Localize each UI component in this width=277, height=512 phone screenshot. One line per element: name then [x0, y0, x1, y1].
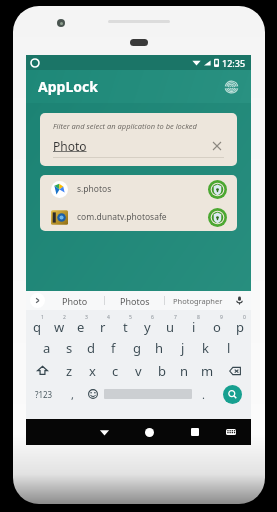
button[interactable]: Backspace: [219, 359, 251, 382]
staticText: p: [236, 318, 244, 336]
button[interactable]: v: [127, 359, 150, 382]
button[interactable]: f: [102, 336, 125, 359]
button[interactable]: Back: [82, 419, 127, 445]
button[interactable]: 8: [182, 313, 205, 336]
staticText: o: [213, 318, 221, 336]
button[interactable]: ,: [62, 382, 82, 406]
button[interactable]: Shift: [26, 359, 58, 382]
staticText: x: [89, 362, 96, 380]
staticText: j: [181, 339, 185, 357]
button[interactable]: Photographer: [165, 291, 230, 310]
button[interactable]: 5: [114, 313, 136, 336]
staticText: f: [111, 339, 116, 357]
staticText: y: [144, 318, 151, 336]
button[interactable]: .: [192, 382, 214, 406]
staticText: ,: [71, 387, 74, 402]
staticText: d: [87, 339, 95, 357]
staticText: n: [180, 362, 189, 380]
staticText: t: [123, 318, 128, 336]
button[interactable]: x: [81, 359, 104, 382]
button[interactable]: Search: [223, 385, 242, 404]
staticText: 5: [129, 314, 132, 321]
button[interactable]: Filter and select an application to be l…: [40, 113, 237, 166]
staticText: g: [133, 339, 141, 357]
button[interactable]: Photo: [45, 291, 104, 310]
staticText: k: [202, 339, 209, 357]
button[interactable]: 7: [159, 313, 182, 336]
button[interactable]: 6: [136, 313, 159, 336]
button[interactable]: h: [148, 336, 171, 359]
staticText: 12:35: [222, 57, 246, 69]
button[interactable]: n: [173, 359, 196, 382]
button[interactable]: Home: [127, 419, 172, 445]
staticText: a: [43, 339, 51, 357]
button[interactable]: s.photos: [40, 175, 237, 203]
staticText: AppLock: [38, 77, 98, 96]
staticText: Photos: [120, 295, 150, 307]
button[interactable]: 0: [228, 313, 251, 336]
button[interactable]: Voice input: [230, 291, 248, 310]
staticText: 4: [107, 314, 110, 321]
button[interactable]: c: [104, 359, 127, 382]
staticText: Photo: [53, 138, 87, 154]
button[interactable]: s: [58, 336, 80, 359]
staticText: 3: [85, 314, 88, 321]
staticText: 9: [220, 314, 223, 321]
button[interactable]: m: [196, 359, 219, 382]
button[interactable]: 4: [92, 313, 114, 336]
button[interactable]: a: [36, 336, 58, 359]
button[interactable]: com.dunatv.photosafe: [40, 203, 237, 231]
staticText: s: [66, 339, 73, 357]
staticText: Photographer: [173, 296, 223, 306]
staticText: i: [192, 318, 196, 336]
button[interactable]: j: [171, 336, 194, 359]
button[interactable]: Lock s.photos: [207, 179, 228, 200]
button[interactable]: Hide keyboard: [217, 419, 245, 445]
staticText: b: [158, 362, 166, 380]
staticText: s.photos: [77, 183, 112, 195]
button[interactable]: Fingerprint: [219, 75, 243, 99]
button[interactable]: 2: [48, 313, 70, 336]
staticText: l: [227, 339, 231, 357]
button[interactable]: 3: [70, 313, 92, 336]
staticText: Photo: [62, 295, 88, 307]
staticText: w: [54, 318, 65, 336]
button[interactable]: Emoji: [82, 382, 104, 406]
staticText: 2: [63, 314, 66, 321]
staticText: e: [77, 318, 85, 336]
button[interactable]: ?123: [26, 382, 62, 406]
button[interactable]: 9: [205, 313, 228, 336]
button[interactable]: d: [80, 336, 102, 359]
button[interactable]: Photos: [105, 291, 164, 310]
staticText: u: [166, 318, 175, 336]
staticText: com.dunatv.photosafe: [77, 211, 167, 223]
staticText: ?123: [35, 389, 53, 400]
staticText: m: [201, 362, 214, 380]
staticText: 1: [41, 314, 44, 321]
button[interactable]: z: [58, 359, 81, 382]
button[interactable]: b: [150, 359, 173, 382]
button[interactable]: Lock com.dunatv.photosafe: [207, 207, 228, 228]
button[interactable]: g: [125, 336, 148, 359]
staticText: 8: [197, 314, 200, 321]
staticText: 6: [151, 314, 154, 321]
staticText: h: [155, 339, 164, 357]
button[interactable]: More suggestions: [30, 293, 45, 308]
button[interactable]: Recents: [172, 419, 217, 445]
staticText: c: [112, 362, 119, 380]
button[interactable]: k: [194, 336, 217, 359]
staticText: 7: [174, 314, 177, 321]
staticText: q: [33, 318, 41, 336]
staticText: .: [202, 387, 205, 402]
staticText: r: [100, 318, 106, 336]
button[interactable]: Clear: [210, 139, 224, 153]
staticText: v: [135, 362, 142, 380]
staticText: Filter and select an application to be l…: [53, 121, 197, 131]
button[interactable]: l: [217, 336, 240, 359]
staticText: 0: [243, 314, 246, 321]
button[interactable]: 1: [26, 313, 48, 336]
staticText: z: [66, 362, 73, 380]
